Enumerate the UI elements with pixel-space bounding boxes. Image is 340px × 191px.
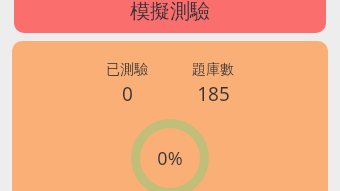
staticText: 0 <box>122 81 133 107</box>
staticText: 0% <box>157 146 183 171</box>
staticText: 題庫數 <box>192 61 234 79</box>
staticText: 已測驗 <box>106 61 148 79</box>
staticText: 185 <box>197 81 230 107</box>
button[interactable]: 模擬測驗 <box>14 0 326 33</box>
button[interactable]: 已測驗 <box>12 41 328 191</box>
staticText: 模擬測驗 <box>130 0 210 24</box>
